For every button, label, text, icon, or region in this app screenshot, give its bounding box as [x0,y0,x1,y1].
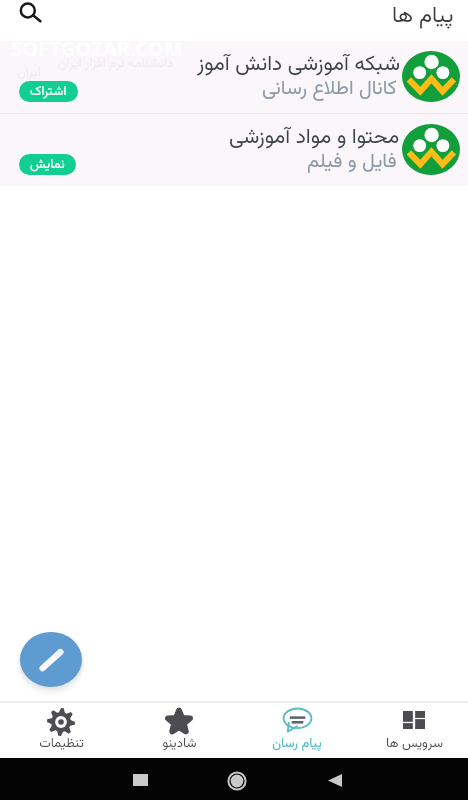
button[interactable]: شادینو [120,703,238,758]
button[interactable]: Home [227,771,247,791]
button[interactable]: محتوا و مواد آموزشی [0,114,468,186]
staticText: کانال اطلاع رسانی [262,73,397,104]
staticText: نمایش [30,155,65,175]
staticText: سرویس ها [386,734,443,754]
button[interactable]: نمایش [19,154,76,175]
button[interactable]: سرویس ها [355,703,468,758]
staticText: پیام رسان [272,734,322,754]
staticText: محتوا و مواد آموزشی [229,121,400,154]
staticText: فایل و فیلم [307,146,397,177]
button[interactable]: تنظیمات [2,703,120,758]
staticText: پیام ها [392,0,454,33]
button[interactable]: اشتراک [19,81,78,102]
staticText: ایران [17,63,41,83]
staticText: دانشنامه نرم افزار ایران [58,54,174,74]
button[interactable]: شبکه آموزشی دانش آموز [0,41,468,113]
button[interactable]: پیام رسان [238,703,356,758]
staticText: اشتراک [30,82,67,102]
button[interactable]: Back [328,774,342,787]
button[interactable]: Compose message [20,632,82,687]
staticText: SOFTGOZAR.COM [11,35,183,62]
staticText: شادینو [162,734,197,754]
staticText: تنظیمات [39,734,84,754]
staticText: شبکه آموزشی دانش آموز [197,48,400,81]
button[interactable]: Search [8,0,42,34]
